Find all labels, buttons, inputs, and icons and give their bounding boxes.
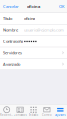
- staticText: Servidores: [3, 50, 22, 55]
- button[interactable]: Teclado: [27, 104, 40, 119]
- button[interactable]: Nombre: [0, 24, 67, 35]
- staticText: OK: [59, 4, 64, 9]
- button[interactable]: Correo: [40, 104, 54, 119]
- staticText: Teclado: [28, 113, 38, 117]
- staticText: Avanzado: [3, 61, 20, 67]
- button[interactable]: Recientes: [0, 104, 13, 119]
- button[interactable]: Cancelar: [1, 2, 21, 11]
- staticText: Título: [3, 16, 12, 21]
- staticText: usuario@ejemplo.com: [24, 27, 64, 32]
- button[interactable]: Contraseña: [0, 36, 67, 47]
- staticText: Cancelar: [3, 4, 19, 9]
- staticText: Contactos: [14, 113, 27, 117]
- button[interactable]: Ajustes: [54, 104, 67, 119]
- button[interactable]: Contactos: [13, 104, 27, 119]
- button[interactable]: Avanzado: [0, 59, 67, 70]
- button[interactable]: Servidores: [0, 47, 67, 58]
- staticText: Correo: [42, 113, 52, 117]
- staticText: oficina: [24, 16, 35, 21]
- button[interactable]: Título: [0, 13, 67, 24]
- staticText: Contraseña: [3, 39, 23, 44]
- button[interactable]: OK: [57, 2, 66, 11]
- staticText: oficina: [27, 4, 40, 9]
- staticText: Nombre: [3, 27, 18, 32]
- staticText: Recientes: [0, 113, 13, 117]
- staticText: Ajustes: [55, 113, 65, 117]
